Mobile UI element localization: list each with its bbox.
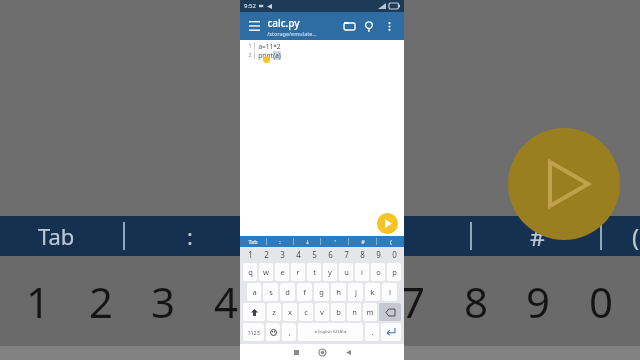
button[interactable]: (: [377, 236, 404, 247]
button[interactable]: x: [283, 303, 297, 321]
staticText: f: [303, 287, 306, 297]
button[interactable]: s: [263, 283, 278, 301]
button[interactable]: Back: [335, 344, 361, 360]
staticText: 3: [151, 273, 176, 330]
button[interactable]: More options: [379, 13, 399, 39]
button[interactable]: Tab: [240, 236, 266, 247]
staticText: (: [390, 238, 392, 245]
button[interactable]: .: [365, 323, 379, 341]
button[interactable]: Recents: [283, 344, 309, 360]
button[interactable]: k: [365, 283, 380, 301]
button[interactable]: 2: [258, 247, 274, 262]
button[interactable]: 5: [306, 247, 322, 262]
button[interactable]: r: [291, 263, 305, 281]
staticText: u: [344, 267, 349, 277]
staticText: z: [272, 307, 276, 317]
button[interactable]: a: [247, 283, 261, 301]
button[interactable]: Emoji: [266, 323, 280, 341]
staticText: 0: [392, 249, 397, 260]
staticText: e: [280, 267, 285, 277]
button[interactable]: 7: [338, 247, 354, 262]
button[interactable]: u: [339, 263, 353, 281]
staticText: 7: [401, 273, 426, 330]
staticText: y: [328, 267, 332, 277]
button[interactable]: ?123: [243, 323, 264, 341]
button[interactable]: f: [297, 283, 312, 301]
button[interactable]: Backspace: [379, 303, 401, 321]
staticText: 5: [312, 249, 317, 260]
staticText: h: [336, 287, 341, 297]
staticText: r: [296, 267, 300, 277]
staticText: d: [285, 287, 290, 297]
staticText: #: [361, 238, 365, 245]
staticText: 5: [276, 273, 301, 330]
button[interactable]: t: [307, 263, 321, 281]
button[interactable]: 9: [370, 247, 386, 262]
staticText: ?123: [248, 329, 260, 336]
button[interactable]: e: [275, 263, 289, 281]
button[interactable]: h: [331, 283, 346, 301]
button[interactable]: q: [243, 263, 257, 281]
button[interactable]: g: [314, 283, 329, 301]
button[interactable]: m: [363, 303, 377, 321]
staticText: a: [252, 287, 257, 297]
staticText: ': [334, 238, 336, 245]
staticText: Tab: [38, 221, 75, 251]
button[interactable]: z: [267, 303, 281, 321]
staticText: m: [366, 307, 374, 317]
staticText: (: [632, 220, 640, 253]
staticText: o: [376, 267, 381, 277]
button[interactable]: o: [371, 263, 385, 281]
button[interactable]: 0: [386, 247, 402, 262]
staticText: 9: [376, 249, 381, 260]
button[interactable]: Enter: [381, 323, 401, 341]
staticText: 9: [526, 273, 551, 330]
button[interactable]: p: [387, 263, 401, 281]
button[interactable]: w: [259, 263, 273, 281]
button[interactable]: ': [321, 236, 348, 247]
button[interactable]: Home: [309, 344, 335, 360]
button[interactable]: :: [267, 236, 293, 247]
staticText: v: [320, 307, 324, 317]
button[interactable]: n: [347, 303, 361, 321]
staticText: 8: [464, 273, 489, 330]
button[interactable]: ,: [282, 323, 296, 341]
staticText: 3: [280, 249, 285, 260]
staticText: 1: [248, 42, 252, 49]
button[interactable]: Run: [377, 213, 398, 234]
staticText: c: [304, 307, 308, 317]
staticText: w: [263, 267, 269, 277]
staticText: i: [361, 267, 363, 277]
button[interactable]: 1: [242, 247, 258, 262]
button[interactable]: l: [382, 283, 397, 301]
button[interactable]: y: [323, 263, 337, 281]
button[interactable]: 3: [274, 247, 290, 262]
button[interactable]: Search: [359, 13, 379, 39]
staticText: s: [269, 287, 273, 297]
staticText: 0: [589, 273, 614, 330]
staticText: 9:52: [244, 2, 256, 10]
button[interactable]: Shift: [243, 303, 265, 321]
staticText: ↓: [305, 239, 310, 245]
button[interactable]: 8: [354, 247, 370, 262]
button[interactable]: Menu: [245, 17, 263, 35]
button[interactable]: c: [299, 303, 313, 321]
staticText: calc.py: [267, 16, 300, 30]
staticText: .: [371, 327, 374, 337]
button[interactable]: i: [355, 263, 369, 281]
staticText: p: [392, 267, 397, 277]
staticText: print: [258, 51, 273, 60]
button[interactable]: j: [348, 283, 363, 301]
staticText: b: [336, 307, 341, 317]
button[interactable]: d: [280, 283, 295, 301]
button[interactable]: ↓: [294, 236, 320, 247]
button[interactable]: ◂ English (USA) ▸: [298, 323, 363, 341]
button[interactable]: Open folder: [339, 13, 359, 39]
button[interactable]: v: [315, 303, 329, 321]
button[interactable]: #: [349, 236, 376, 247]
button[interactable]: 4: [290, 247, 306, 262]
staticText: #: [530, 220, 546, 253]
button[interactable]: 6: [322, 247, 338, 262]
staticText: ◂ English (USA) ▸: [314, 329, 347, 335]
button[interactable]: b: [331, 303, 345, 321]
